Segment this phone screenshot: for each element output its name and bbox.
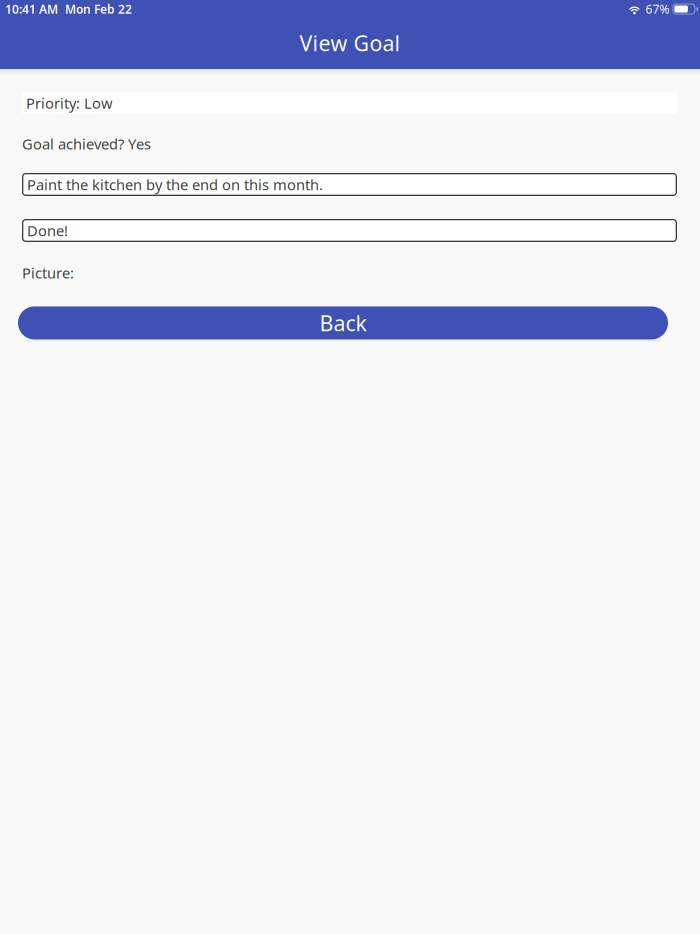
staticText: Paint the kitchen by the end on this mon…: [27, 175, 323, 194]
button[interactable]: Done!: [22, 219, 677, 242]
button[interactable]: Priority: Low: [22, 92, 677, 114]
staticText: Done!: [27, 221, 68, 240]
staticText: 67%: [645, 1, 669, 17]
staticText: 10:41 AM: [5, 1, 58, 17]
staticText: Mon Feb 22: [65, 1, 132, 17]
staticText: Picture:: [22, 263, 74, 282]
staticText: Back: [319, 309, 366, 337]
button[interactable]: Back: [18, 306, 668, 339]
staticText: View Goal: [299, 29, 400, 57]
button[interactable]: Paint the kitchen by the end on this mon…: [22, 173, 677, 196]
staticText: Goal achieved? Yes: [22, 134, 151, 153]
staticText: Priority: Low: [26, 93, 113, 113]
